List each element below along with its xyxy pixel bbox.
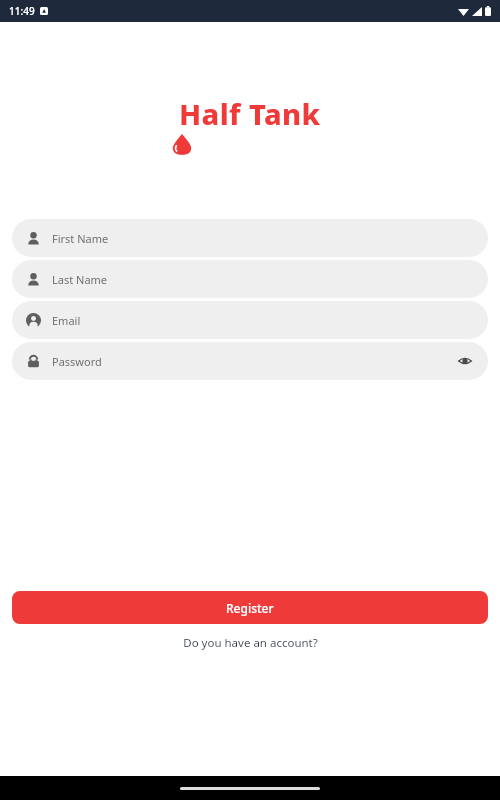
button[interactable]: Register [12,591,488,624]
staticText: First Name [52,231,109,246]
staticText: Half Tank [179,94,321,133]
button[interactable]: Password [12,342,488,380]
button[interactable]: Show password [456,352,474,370]
button[interactable]: Last Name [12,260,488,298]
staticText: Register [226,600,274,616]
button[interactable]: Email [12,301,488,339]
staticText: Email [52,313,81,328]
staticText: Password [52,354,102,369]
button[interactable]: First Name [12,219,488,257]
staticText: 11:49 [9,4,35,18]
staticText: Last Name [52,272,108,287]
button[interactable]: Do you have an account? [0,635,500,651]
staticText: Do you have an account? [183,635,318,651]
